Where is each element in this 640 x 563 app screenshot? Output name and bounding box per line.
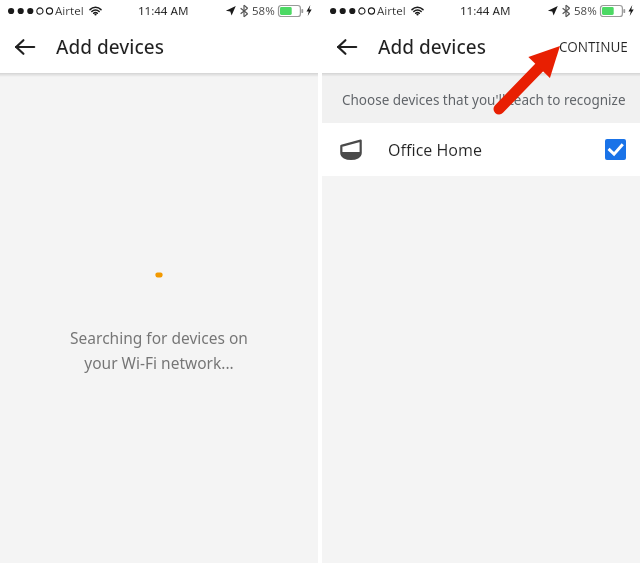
staticText: Airtel	[55, 3, 84, 19]
button[interactable]: Office Home selected	[605, 139, 626, 160]
staticText: 11:44 AM	[138, 3, 189, 19]
staticText: Add devices	[56, 34, 164, 60]
button[interactable]: Office Home	[322, 123, 640, 176]
button[interactable]: Back	[0, 22, 50, 72]
staticText: CONTINUE	[559, 38, 628, 56]
staticText: 58%	[574, 3, 597, 19]
button[interactable]: Back	[322, 22, 372, 72]
staticText: 58%	[252, 3, 275, 19]
staticText: Searching for devices on	[70, 327, 248, 348]
staticText: Add devices	[378, 34, 486, 60]
staticText: your Wi-Fi network...	[84, 352, 234, 373]
staticText: Office Home	[388, 139, 483, 161]
button[interactable]: CONTINUE	[547, 28, 640, 66]
staticText: Choose devices that you'll teach to reco…	[342, 91, 640, 109]
staticText: Airtel	[377, 3, 406, 19]
staticText: 11:44 AM	[460, 3, 511, 19]
